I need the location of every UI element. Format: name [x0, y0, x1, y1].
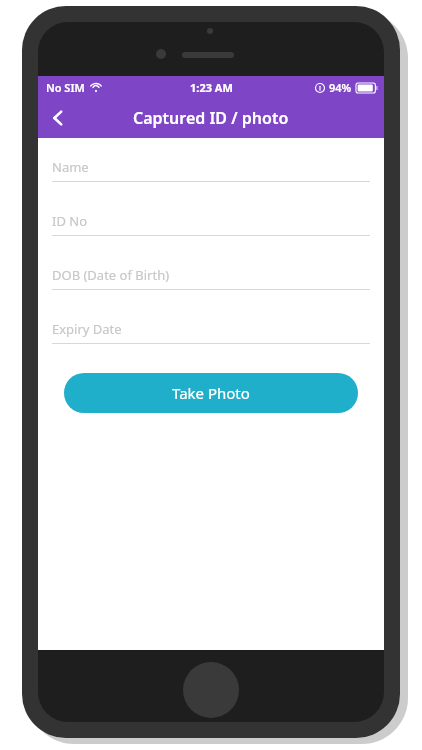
button[interactable]: ID No — [52, 212, 370, 236]
staticText: 94% — [329, 80, 352, 95]
staticText: No SIM — [46, 80, 85, 95]
button[interactable]: Expiry Date — [52, 320, 370, 344]
button[interactable]: Home — [183, 662, 239, 718]
staticText: ID No — [52, 212, 88, 230]
staticText: Expiry Date — [52, 320, 122, 338]
staticText: Take Photo — [172, 383, 250, 403]
button[interactable]: DOB (Date of Birth) — [52, 266, 370, 290]
staticText: 1:23 AM — [190, 80, 233, 95]
staticText: Captured ID / photo — [133, 107, 289, 129]
button[interactable]: Back — [38, 98, 78, 138]
button[interactable]: Take Photo — [64, 373, 358, 413]
button[interactable]: Name — [52, 158, 370, 182]
staticText: DOB (Date of Birth) — [52, 266, 170, 284]
staticText: Name — [52, 158, 89, 176]
